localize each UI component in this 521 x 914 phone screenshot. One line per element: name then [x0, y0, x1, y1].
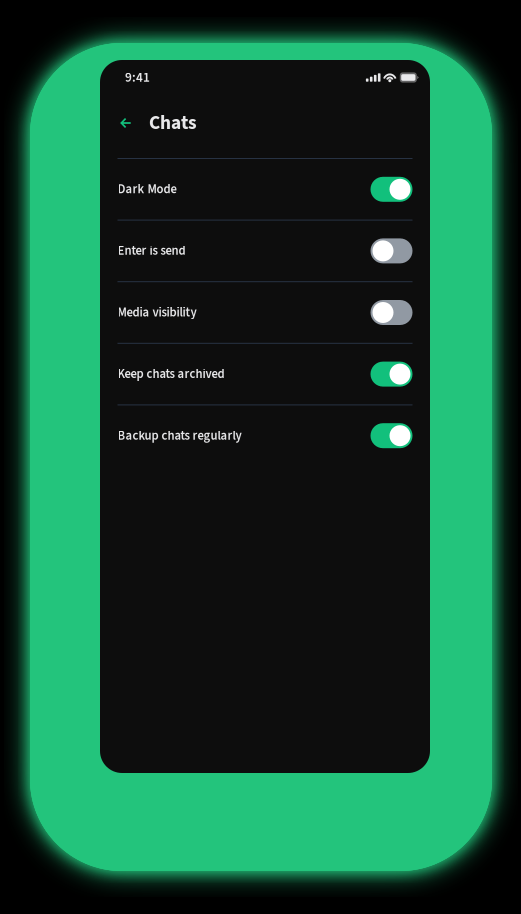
- staticText: Media visibility: [117, 303, 196, 321]
- staticText: Enter is send: [117, 242, 185, 260]
- staticText: Dark Mode: [117, 180, 176, 198]
- staticText: 9:41: [125, 68, 150, 87]
- button[interactable]: Media visibility: [100, 282, 430, 343]
- button[interactable]: Backup chats regularly: [100, 405, 430, 466]
- button[interactable]: Enter is send: [100, 221, 430, 281]
- button[interactable]: Keep chats archived: [100, 344, 430, 404]
- staticText: Backup chats regularly: [117, 427, 241, 445]
- button[interactable]: Back: [115, 112, 137, 134]
- button[interactable]: Dark Mode: [100, 159, 430, 220]
- staticText: Chats: [149, 109, 197, 137]
- staticText: Keep chats archived: [117, 365, 224, 383]
